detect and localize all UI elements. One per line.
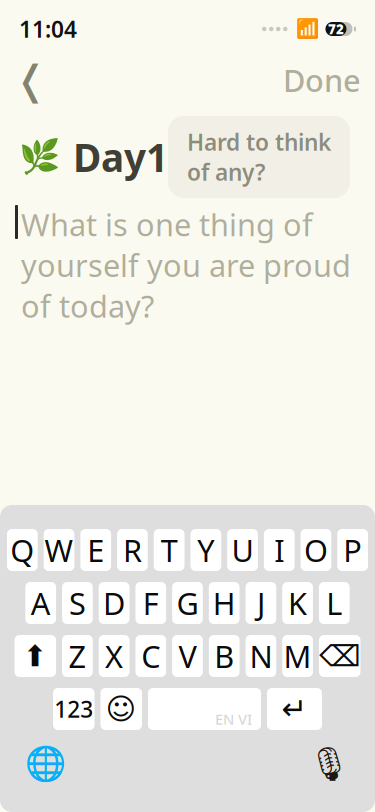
button[interactable]: space — [148, 688, 261, 730]
staticText: A — [31, 583, 51, 623]
button[interactable]: R — [117, 529, 148, 571]
staticText: EN VI — [215, 709, 252, 729]
staticText: O — [304, 530, 328, 570]
button[interactable]: T — [154, 529, 184, 571]
staticText: ↵ — [281, 692, 307, 726]
staticText: E — [87, 530, 104, 570]
staticText: 🌐 — [25, 745, 67, 783]
button[interactable]: Z — [62, 635, 93, 677]
staticText: 📶 — [295, 18, 318, 40]
button[interactable]: B — [209, 635, 240, 677]
button[interactable]: E — [80, 529, 111, 571]
staticText: F — [143, 583, 159, 623]
staticText: D — [103, 583, 125, 623]
button[interactable]: Delete — [319, 635, 360, 677]
staticText: N — [249, 636, 272, 676]
button[interactable]: C — [135, 635, 166, 677]
staticText: V — [178, 636, 196, 676]
button[interactable]: V — [172, 635, 203, 677]
staticText: Done — [283, 60, 361, 100]
staticText: 123 — [54, 694, 93, 724]
staticText: S — [69, 583, 86, 623]
staticText: 72 — [328, 20, 344, 38]
staticText: 🎙 — [308, 745, 350, 783]
staticText: M — [284, 636, 312, 676]
button[interactable]: Done — [283, 58, 361, 102]
button[interactable]: Y — [190, 529, 221, 571]
button[interactable]: N — [246, 635, 276, 677]
button[interactable]: Back — [14, 58, 58, 102]
staticText: Hard to think of any? — [187, 127, 331, 187]
staticText: P — [343, 530, 362, 570]
staticText: ⬆ — [23, 639, 48, 673]
button[interactable]: Next keyboard — [24, 742, 68, 786]
button[interactable]: J — [246, 582, 276, 624]
staticText: ❬ — [14, 57, 48, 103]
button[interactable]: Return — [267, 688, 322, 730]
staticText: Y — [197, 530, 214, 570]
staticText: H — [213, 583, 236, 623]
staticText: R — [123, 530, 142, 570]
button[interactable]: Dictate — [307, 742, 351, 786]
button[interactable]: I — [264, 529, 295, 571]
staticText: U — [232, 530, 254, 570]
button[interactable]: O — [301, 529, 331, 571]
button[interactable]: W — [44, 529, 74, 571]
button[interactable]: F — [135, 582, 166, 624]
staticText: J — [257, 583, 265, 623]
button[interactable]: D — [99, 582, 129, 624]
staticText: Z — [68, 636, 86, 676]
button[interactable]: M — [282, 635, 313, 677]
button[interactable]: Hard to think of any? — [168, 116, 350, 198]
staticText: C — [141, 636, 160, 676]
button[interactable]: U — [227, 529, 258, 571]
staticText: 🌿 — [19, 138, 61, 176]
button[interactable]: Shift — [15, 635, 56, 677]
staticText: ⌫ — [319, 639, 360, 673]
button[interactable]: A — [25, 582, 56, 624]
button[interactable]: S — [62, 582, 93, 624]
staticText: I — [274, 530, 284, 570]
button[interactable]: H — [209, 582, 240, 624]
button[interactable]: L — [319, 582, 350, 624]
staticText: B — [214, 636, 234, 676]
staticText: What is one thing of yourself you are pr… — [21, 204, 351, 326]
staticText: L — [326, 583, 342, 623]
staticText: W — [45, 530, 74, 570]
button[interactable]: Q — [7, 529, 38, 571]
staticText: Q — [10, 530, 34, 570]
button[interactable]: K — [282, 582, 313, 624]
button[interactable]: X — [99, 635, 129, 677]
staticText: T — [161, 530, 178, 570]
staticText: G — [176, 583, 198, 623]
staticText: Day1 — [73, 131, 168, 183]
button[interactable]: G — [172, 582, 203, 624]
staticText: 11:04 — [19, 14, 77, 44]
staticText: ☺ — [106, 692, 137, 726]
staticText: K — [288, 583, 307, 623]
button[interactable]: Numbers — [53, 688, 94, 730]
button[interactable]: P — [337, 529, 368, 571]
staticText: X — [105, 636, 123, 676]
button[interactable]: Emoji — [100, 688, 142, 730]
